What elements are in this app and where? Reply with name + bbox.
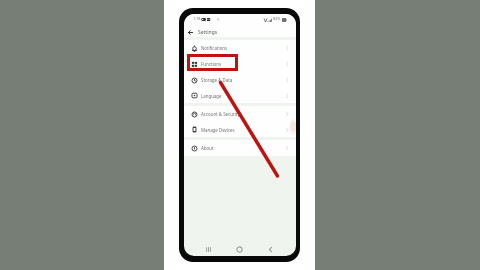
button[interactable]: Manage Devices (184, 122, 296, 137)
staticText: Storage & Data (201, 77, 233, 83)
button[interactable]: Storage & Data (184, 72, 296, 88)
staticText: Manage Devices (201, 127, 235, 133)
staticText: Account & Security (201, 111, 240, 117)
button[interactable]: Notifications (184, 40, 296, 56)
button[interactable]: Back (187, 29, 194, 36)
staticText: 82% (273, 16, 281, 21)
staticText: About (201, 145, 214, 151)
staticText: Functions (201, 61, 222, 67)
button[interactable]: Home (234, 244, 245, 255)
button[interactable]: Account & Security (184, 106, 296, 122)
button[interactable]: Functions (184, 56, 296, 72)
button[interactable]: About (184, 140, 296, 156)
button[interactable]: Language (184, 88, 296, 103)
staticText: 1:18 (193, 16, 201, 21)
staticText: Settings (198, 29, 218, 36)
button[interactable]: Recents (203, 244, 214, 255)
button[interactable]: Back (265, 244, 276, 255)
staticText: Notifications (201, 45, 228, 51)
staticText: Language (201, 93, 222, 99)
